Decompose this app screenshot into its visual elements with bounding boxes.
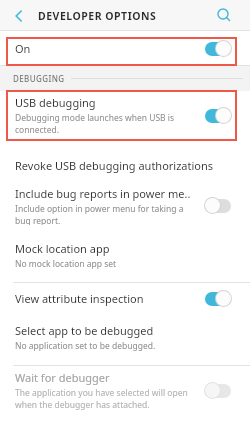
staticText: No mock location app set xyxy=(15,258,117,270)
staticText: Mock location app xyxy=(15,241,110,256)
button[interactable]: Select app to be debugged xyxy=(0,314,250,365)
staticText: Include bug reports in power me.. xyxy=(15,186,191,201)
button[interactable]: USB debugging xyxy=(0,91,250,140)
staticText: No application set to be debugged. xyxy=(15,340,156,352)
staticText: On xyxy=(15,41,31,56)
staticText: DEBUGGING xyxy=(13,73,65,84)
button[interactable]: On xyxy=(0,31,250,65)
staticText: USB debugging xyxy=(15,95,96,110)
staticText: The application you have selected will o… xyxy=(15,387,188,399)
staticText: Revoke USB debugging authorizations xyxy=(15,158,214,173)
staticText: Select app to be debugged xyxy=(15,323,154,338)
button[interactable] xyxy=(216,4,240,28)
staticText: bug report. xyxy=(15,215,61,225)
button[interactable]: Wait for debugger xyxy=(0,366,250,427)
staticText: connected. xyxy=(15,124,59,136)
button[interactable] xyxy=(10,4,34,28)
staticText: Include option in power menu for taking … xyxy=(15,203,184,215)
staticText: Wait for debugger xyxy=(15,370,110,385)
staticText: when the debugger has attached. xyxy=(15,399,150,411)
staticText: DEVELOPER OPTIONS xyxy=(38,9,157,23)
button[interactable]: View attribute inspection xyxy=(0,283,250,314)
staticText: View attribute inspection xyxy=(15,291,144,306)
button[interactable]: Mock location app xyxy=(0,232,250,282)
button[interactable]: Include bug reports in power me.. xyxy=(0,186,250,232)
staticText: Debugging mode launches when USB is xyxy=(15,112,175,124)
button[interactable]: Revoke USB debugging authorizations xyxy=(0,140,250,186)
